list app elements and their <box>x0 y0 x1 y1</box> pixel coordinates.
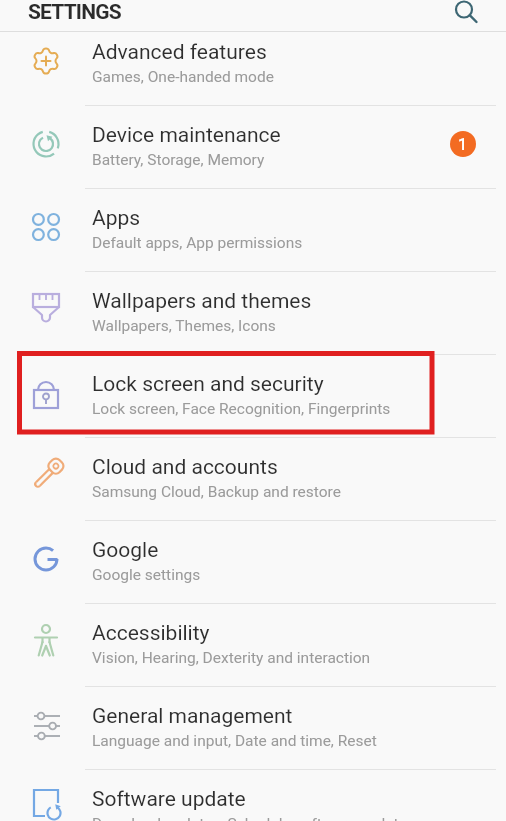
staticText: Language and input, Date and time, Reset <box>92 732 377 750</box>
staticText: Accessibility <box>92 621 210 646</box>
staticText: Software update <box>92 787 246 812</box>
staticText: Wallpapers and themes <box>92 289 312 314</box>
staticText: Google settings <box>92 566 201 584</box>
staticText: Lock screen and security <box>92 372 324 397</box>
button[interactable]: Cloud and accounts <box>0 438 506 521</box>
staticText: Wallpapers, Themes, Icons <box>92 317 276 335</box>
staticText: Vision, Hearing, Dexterity and interacti… <box>92 649 371 667</box>
button[interactable]: Wallpapers and themes <box>0 272 506 355</box>
button[interactable]: Software update <box>0 770 506 821</box>
staticText: Games, One-handed mode <box>92 68 274 86</box>
staticText: Samsung Cloud, Backup and restore <box>92 483 341 501</box>
staticText: Device maintenance <box>92 123 281 148</box>
staticText: Apps <box>92 206 141 231</box>
staticText: Battery, Storage, Memory <box>92 151 265 169</box>
button[interactable]: Apps <box>0 189 506 272</box>
staticText: 1 <box>458 135 468 154</box>
button[interactable]: Advanced features <box>0 23 506 106</box>
staticText: Lock screen, Face Recognition, Fingerpri… <box>92 400 391 418</box>
button[interactable]: Accessibility <box>0 604 506 687</box>
button[interactable]: Google <box>0 521 506 604</box>
button[interactable] <box>462 0 506 31</box>
button[interactable]: Device maintenance <box>0 106 506 189</box>
staticText: SETTINGS <box>28 0 121 25</box>
staticText: General management <box>92 704 293 729</box>
button[interactable]: General management <box>0 687 506 770</box>
staticText: Google <box>92 538 159 563</box>
staticText: Download updates, Schedule software upda… <box>92 815 415 821</box>
button[interactable]: Lock screen and security <box>0 355 506 438</box>
staticText: Advanced features <box>92 40 267 65</box>
staticText: Cloud and accounts <box>92 455 278 480</box>
staticText: Default apps, App permissions <box>92 234 303 252</box>
